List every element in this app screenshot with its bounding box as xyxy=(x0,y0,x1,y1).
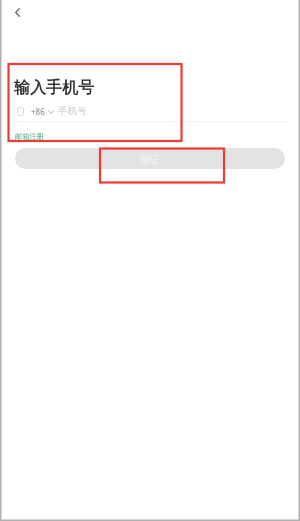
button[interactable]: Select country code xyxy=(16,106,54,117)
staticText: 邮箱注册 xyxy=(15,132,44,141)
button[interactable]: 邮箱注册 xyxy=(15,132,44,141)
staticText: 手机号 xyxy=(58,105,87,117)
button[interactable]: Back xyxy=(7,2,28,23)
staticText: 输入手机号 xyxy=(14,78,94,98)
button[interactable]: 验证 xyxy=(15,148,285,169)
staticText: +86 xyxy=(31,106,45,117)
staticText: 验证 xyxy=(140,153,160,166)
